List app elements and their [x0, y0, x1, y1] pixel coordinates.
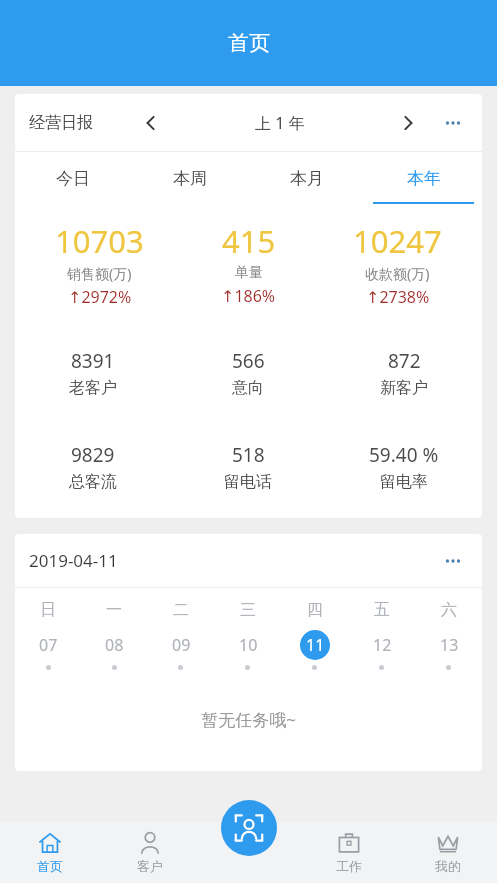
button[interactable]: 更多	[438, 546, 468, 576]
staticText: 10703	[55, 220, 144, 262]
button[interactable]: 10703	[25, 220, 174, 308]
button[interactable]: 本月	[248, 152, 365, 204]
staticText: 五	[374, 600, 390, 620]
button[interactable]: 11	[281, 630, 348, 670]
button[interactable]: 扫描添加客户	[221, 800, 277, 856]
staticText: 872	[388, 348, 421, 374]
staticText: 留电率	[380, 472, 428, 492]
staticText: 三	[240, 600, 256, 620]
staticText: 本周	[173, 168, 207, 189]
button[interactable]: 08	[81, 630, 147, 670]
staticText: 留电话	[224, 472, 272, 492]
button[interactable]: 8391	[15, 348, 170, 398]
staticText: 10	[239, 634, 258, 656]
staticText: 意向	[232, 378, 264, 398]
button[interactable]: 客户	[100, 822, 200, 883]
staticText: 518	[232, 442, 265, 468]
staticText: ↑2738%	[366, 286, 430, 308]
staticText: 11	[306, 634, 325, 656]
staticText: 2019-04-11	[29, 549, 118, 572]
staticText: 收款额(万)	[365, 264, 430, 283]
staticText: 单量	[235, 264, 263, 282]
staticText: 59.40 %	[369, 442, 439, 468]
button[interactable]: 09	[147, 630, 214, 670]
button[interactable]: 下一个周期	[394, 109, 422, 137]
button[interactable]: 更多	[438, 108, 468, 138]
button[interactable]: 首页	[0, 822, 100, 883]
staticText: 415	[222, 220, 276, 262]
staticText: 暂无任务哦~	[201, 708, 296, 731]
staticText: 总客流	[69, 472, 117, 492]
staticText: 10247	[353, 220, 442, 262]
staticText: 09	[172, 634, 191, 656]
button[interactable]: 9829	[15, 442, 170, 492]
button[interactable]: 10247	[323, 220, 472, 308]
staticText: 9829	[71, 442, 115, 468]
button[interactable]: 我的	[398, 822, 497, 883]
staticText: 今日	[56, 168, 90, 189]
staticText: ↑2972%	[68, 286, 132, 308]
button[interactable]: 本年	[365, 152, 482, 204]
staticText: 上 1 年	[255, 112, 305, 134]
staticText: 07	[39, 634, 58, 656]
button[interactable]: 工作	[299, 822, 398, 883]
button[interactable]: 415	[174, 220, 323, 307]
staticText: 我的	[435, 858, 461, 874]
button[interactable]: 518	[170, 442, 326, 492]
button[interactable]: 07	[15, 630, 81, 670]
button[interactable]: 今日	[15, 152, 131, 204]
button[interactable]: 本周	[131, 152, 248, 204]
button[interactable]: 872	[326, 348, 482, 398]
staticText: 本年	[407, 168, 441, 189]
staticText: 六	[441, 600, 457, 620]
staticText: 566	[232, 348, 265, 374]
staticText: 本月	[290, 168, 324, 189]
staticText: 08	[105, 634, 124, 656]
staticText: 13	[440, 634, 459, 656]
button[interactable]: 10	[214, 630, 281, 670]
staticText: 12	[373, 634, 392, 656]
staticText: 日	[40, 600, 56, 620]
staticText: 客户	[137, 858, 163, 874]
staticText: 工作	[336, 858, 362, 874]
button[interactable]: 59.40 %	[326, 442, 482, 492]
staticText: 二	[173, 600, 189, 620]
staticText: 首页	[37, 858, 63, 874]
staticText: 新客户	[380, 378, 428, 398]
staticText: 四	[307, 600, 323, 620]
staticText: 首页	[228, 30, 270, 56]
staticText: 8391	[71, 348, 115, 374]
button[interactable]: 13	[415, 630, 482, 670]
button[interactable]: 上一个周期	[137, 109, 165, 137]
staticText: 一	[106, 600, 122, 620]
button[interactable]: 12	[348, 630, 415, 670]
staticText: 老客户	[69, 378, 117, 398]
staticText: 销售额(万)	[67, 264, 132, 283]
button[interactable]: 566	[170, 348, 326, 398]
staticText: 经营日报	[29, 113, 93, 133]
staticText: ↑186%	[221, 285, 276, 307]
